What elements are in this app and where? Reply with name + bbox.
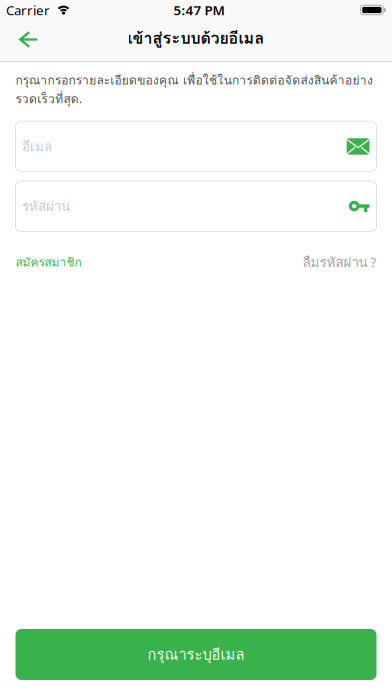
button[interactable]: อีเมล <box>15 121 376 172</box>
staticText: เข้าสู่ระบบด้วยอีเมล <box>127 26 264 50</box>
button[interactable]: รหัสผ่าน <box>15 181 376 231</box>
button[interactable]: สมัครสมาชิก <box>15 253 81 272</box>
staticText: อีเมล <box>22 136 52 157</box>
button[interactable]: กรุณาระบุอีเมล <box>15 629 376 680</box>
staticText: รหัสผ่าน <box>22 196 70 217</box>
button[interactable]: Back <box>0 20 52 61</box>
button[interactable]: ลืมรหัสผ่าน ? <box>302 252 376 273</box>
staticText: กรุณากรอกรายละเอียดของคุณ เพื่อใช้ในการต… <box>15 71 373 108</box>
staticText: 5:47 PM <box>173 1 224 19</box>
staticText: สมัครสมาชิก <box>15 253 81 272</box>
staticText: กรุณาระบุอีเมล <box>147 643 244 666</box>
staticText: ลืมรหัสผ่าน ? <box>302 252 376 273</box>
staticText: Carrier <box>6 1 50 19</box>
